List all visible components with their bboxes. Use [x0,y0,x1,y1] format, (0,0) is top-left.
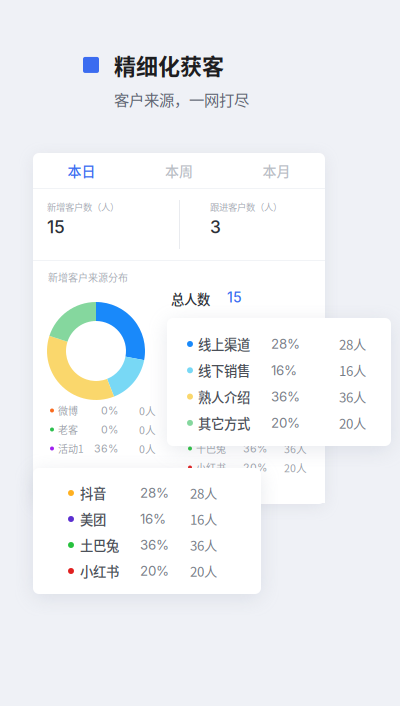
staticText: 本周 [165,160,193,181]
staticText: 20% [271,415,300,431]
staticText: 0人 [139,441,156,456]
staticText: 美团 [196,422,216,437]
staticText: 20人 [284,460,307,475]
staticText: 跟进客户数（人） [210,200,282,213]
staticText: 精细化获客 [114,49,224,81]
staticText: 新增客户来源分布 [48,270,128,284]
staticText: 20人 [190,561,217,581]
staticText: 微博 [58,403,78,418]
staticText: 28% [271,336,300,352]
staticText: 16% [246,423,267,436]
staticText: 老客 [58,422,78,437]
staticText: 其它方式 [198,413,250,432]
staticText: 16人 [339,361,366,380]
staticText: 活动1 [58,441,84,456]
staticText: 36人 [284,441,307,456]
staticText: 本月 [262,160,290,181]
staticText: 线下销售 [198,361,250,380]
staticText: 16% [271,362,297,378]
staticText: 美团 [80,509,106,529]
staticText: 小红书 [196,460,226,475]
staticText: 0% [101,423,118,436]
button[interactable]: 本日 [33,153,130,188]
staticText: 十巴兔 [196,441,226,456]
button[interactable]: 本月 [228,153,325,188]
staticText: 客户来源，一网打尽 [114,88,249,110]
staticText: 15 [47,216,65,237]
staticText: 28人 [190,483,217,503]
staticText: 16% [140,511,166,527]
staticText: 小红书 [80,561,119,581]
staticText: 本日 [67,160,95,181]
staticText: 36% [243,442,267,455]
staticText: 线上渠道 [198,334,250,354]
staticText: 28人 [339,334,366,354]
staticText: 0人 [139,422,156,437]
staticText: 36人 [339,387,366,406]
staticText: 16人 [284,422,307,437]
staticText: 28% [243,404,267,417]
staticText: 36% [271,388,300,405]
staticText: 0人 [139,403,156,418]
staticText: 0% [101,404,118,417]
staticText: 36% [140,537,169,553]
staticText: 熟人介绍 [198,387,250,406]
staticText: 新增客户数（人） [47,200,119,213]
button[interactable]: 本周 [130,153,228,188]
staticText: 16人 [190,509,217,529]
staticText: 36人 [190,535,217,555]
staticText: 20% [243,461,267,474]
staticText: 36% [94,442,118,455]
staticText: 20% [140,563,169,579]
staticText: 土巴兔 [80,535,119,555]
staticText: 抖音 [80,483,106,503]
staticText: 3 [210,216,221,237]
staticText: 28% [140,485,169,501]
staticText: 15 [227,289,242,306]
staticText: 抖音 [196,403,216,418]
staticText: 20人 [339,413,366,432]
staticText: 总人数 [171,289,210,308]
